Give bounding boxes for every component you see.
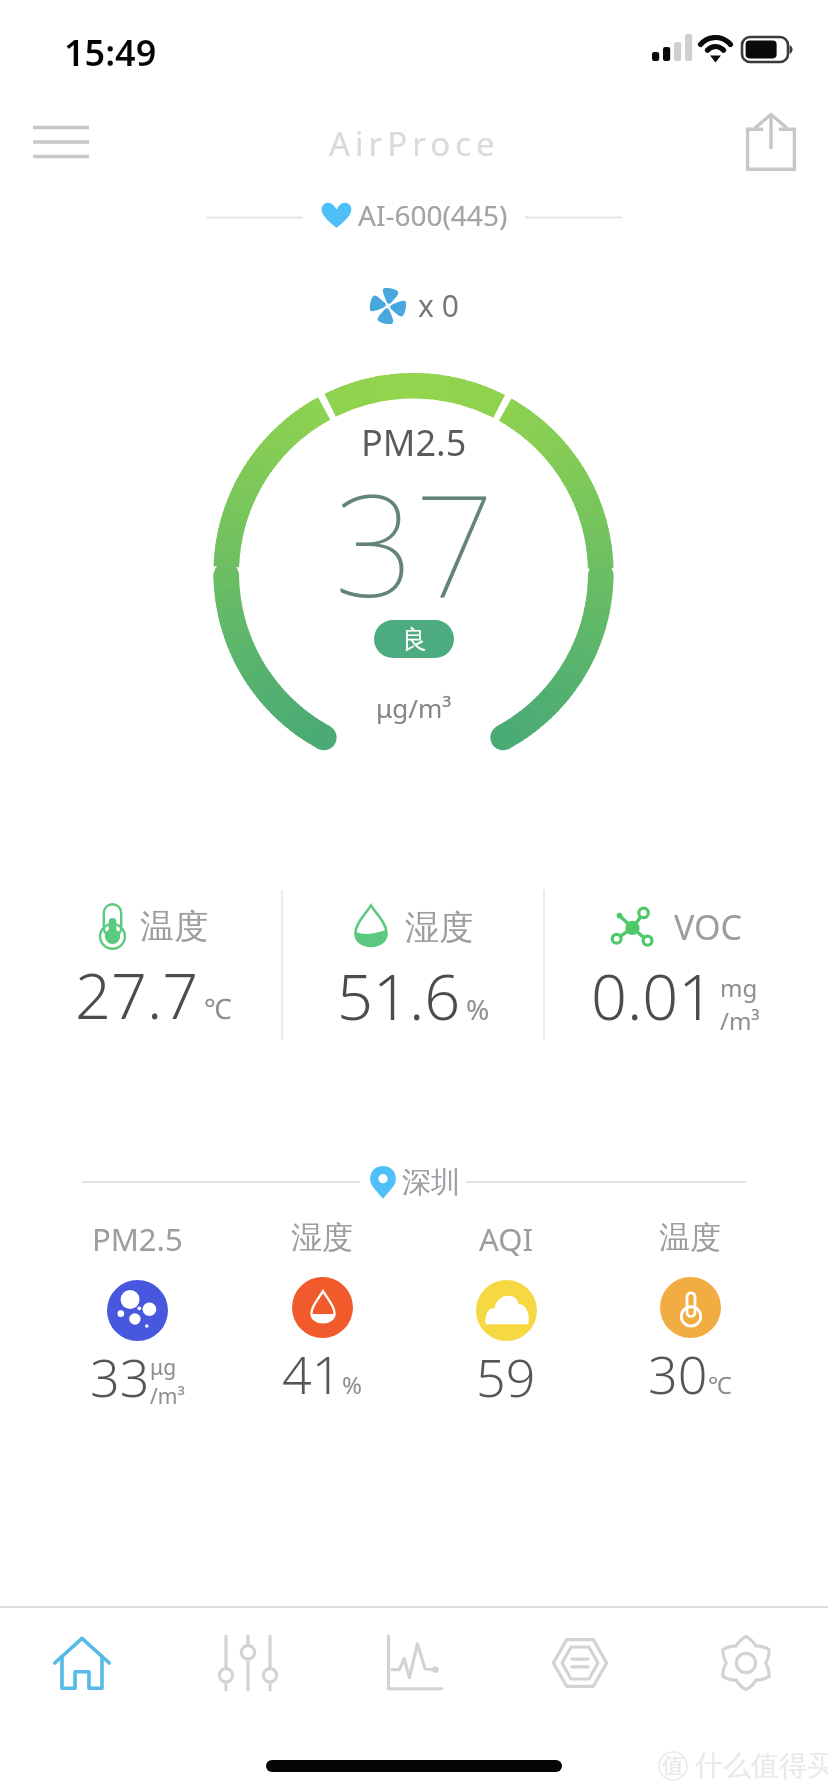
staticText: 33 <box>90 1341 150 1412</box>
button[interactable]: Controls <box>165 1608 331 1718</box>
staticText: 15:49 <box>64 28 157 77</box>
staticText: VOC <box>674 904 743 950</box>
staticText: % <box>342 1368 362 1401</box>
staticText: /m³ <box>150 1382 185 1411</box>
staticText: 湿度 <box>405 906 473 949</box>
staticText: /m³ <box>720 1004 760 1037</box>
button[interactable]: 温度 <box>24 903 282 1038</box>
staticText: PM2.5 <box>92 1218 183 1260</box>
staticText: 37 <box>334 446 495 638</box>
staticText: μg/m³ <box>376 690 452 725</box>
staticText: 湿度 <box>291 1218 353 1257</box>
staticText: 温度 <box>140 905 208 948</box>
staticText: ℃ <box>708 1368 732 1401</box>
button[interactable]: 温度 <box>600 1218 780 1409</box>
button[interactable]: PM2.5 <box>47 1218 227 1412</box>
staticText: ℃ <box>204 989 232 1027</box>
staticText: mg <box>720 971 758 1004</box>
button[interactable]: 湿度 <box>232 1218 412 1409</box>
staticText: 0.01 <box>591 953 715 1039</box>
button[interactable]: VOC <box>544 903 806 1039</box>
button[interactable]: 良 <box>374 620 454 658</box>
staticText: PM2.5 <box>361 418 467 467</box>
staticText: AirProce <box>329 121 500 166</box>
staticText: 51.6 <box>337 953 461 1039</box>
staticText: 59 <box>476 1341 536 1412</box>
staticText: x 0 <box>418 285 459 326</box>
staticText: 良 <box>402 624 427 655</box>
button[interactable]: Share <box>726 100 816 184</box>
button[interactable]: 湿度 <box>282 903 544 1039</box>
staticText: 值 <box>662 1752 684 1780</box>
staticText: μg <box>150 1353 177 1382</box>
button[interactable]: AQI <box>416 1218 596 1412</box>
staticText: % <box>466 990 490 1028</box>
staticText: 温度 <box>659 1218 721 1257</box>
button[interactable]: Home <box>0 1608 165 1718</box>
button[interactable]: History <box>331 1608 497 1718</box>
staticText: AI-600(445) <box>358 196 508 234</box>
button[interactable]: Settings <box>663 1608 828 1718</box>
button[interactable]: Filter <box>497 1608 663 1718</box>
staticText: 41 <box>282 1338 342 1409</box>
staticText: 30 <box>648 1338 708 1409</box>
staticText: 深圳 <box>402 1164 460 1201</box>
staticText: AQI <box>479 1218 533 1260</box>
button[interactable]: Menu <box>16 108 106 178</box>
staticText: 什么值得买 <box>695 1748 828 1783</box>
staticText: 27.7 <box>75 952 199 1038</box>
